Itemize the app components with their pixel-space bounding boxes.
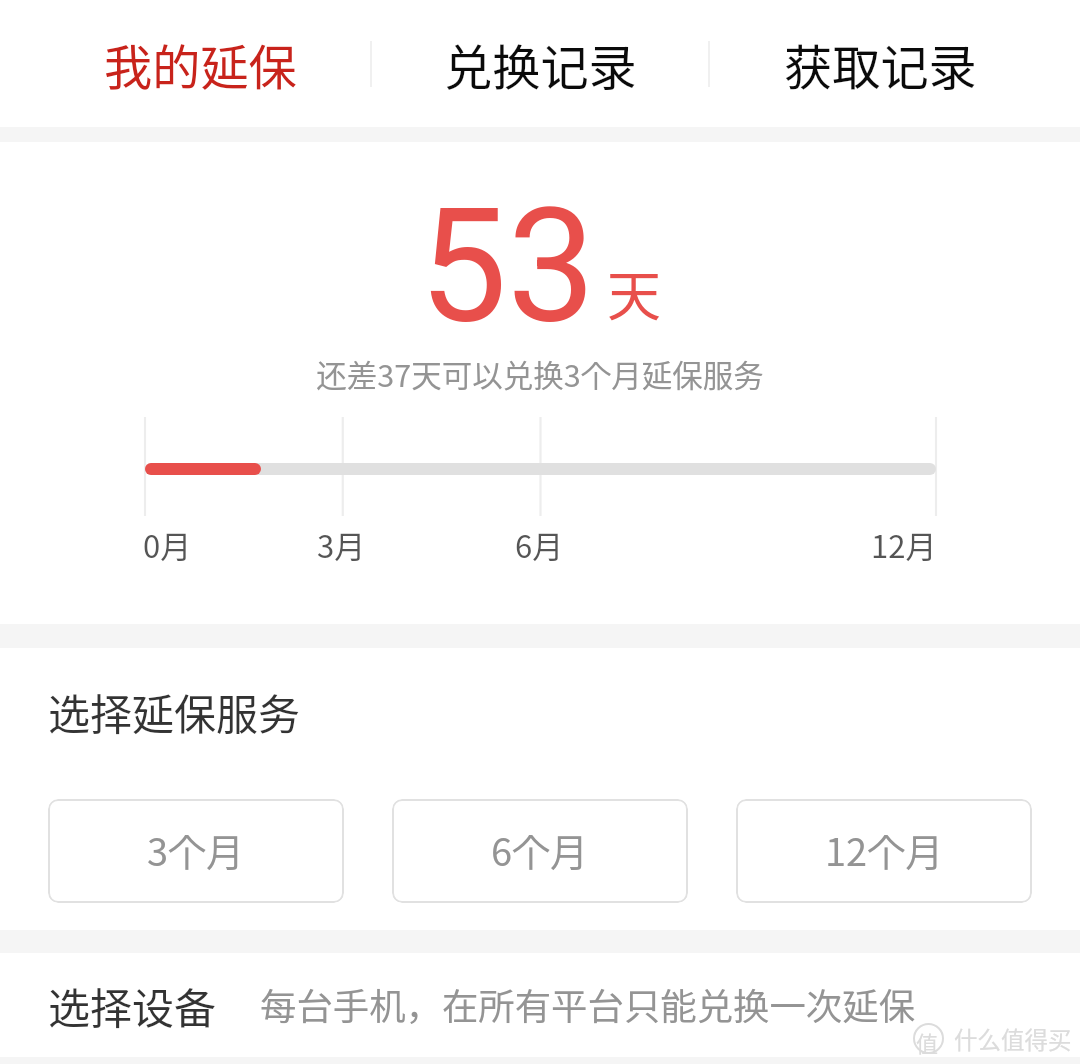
staticText: 6个月	[491, 822, 589, 877]
staticText: 我的延保	[104, 29, 297, 99]
staticText: 选择延保服务	[48, 681, 301, 742]
staticText: 53	[419, 174, 596, 358]
staticText: 12个月	[825, 822, 944, 877]
button[interactable]: 兑换记录	[370, 0, 710, 127]
staticText: 值	[916, 1026, 939, 1058]
staticText: 3个月	[147, 822, 245, 877]
staticText: 获取记录	[784, 29, 977, 99]
button[interactable]: 6个月	[392, 799, 688, 903]
staticText: 0月	[143, 522, 192, 567]
staticText: 6月	[515, 522, 564, 567]
staticText: 12月	[871, 522, 937, 567]
staticText: 选择设备	[48, 975, 217, 1036]
button[interactable]: 3个月	[48, 799, 344, 903]
staticText: 还差37天可以兑换3个月延保服务	[0, 352, 1080, 396]
staticText: 天	[607, 253, 661, 331]
button[interactable]: 获取记录	[710, 0, 1050, 127]
button[interactable]: 12个月	[736, 799, 1032, 903]
staticText: 3月	[317, 522, 366, 567]
button[interactable]: 我的延保	[30, 0, 370, 127]
staticText: 每台手机，在所有平台只能兑换一次延保	[260, 978, 916, 1031]
staticText: 兑换记录	[444, 29, 637, 99]
button[interactable]: 选择设备	[0, 953, 1080, 1057]
staticText: 什么值得买	[954, 1022, 1072, 1056]
